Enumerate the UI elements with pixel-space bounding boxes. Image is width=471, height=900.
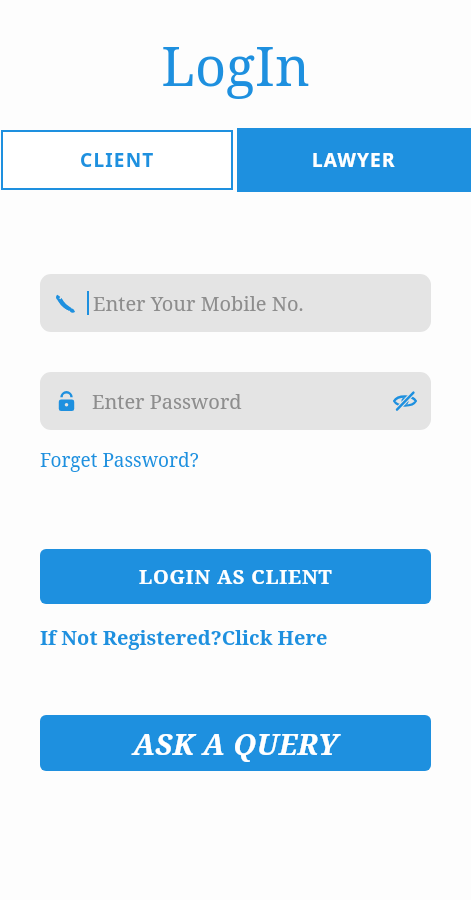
button[interactable]: Show password <box>383 379 427 423</box>
button[interactable]: Enter Your Mobile No. <box>40 274 431 332</box>
staticText: ASK A QUERY <box>133 724 339 763</box>
button[interactable]: LAWYER <box>237 128 471 192</box>
staticText: Enter Your Mobile No. <box>93 290 304 317</box>
button[interactable]: Enter Password <box>40 372 431 430</box>
staticText: LOGIN AS CLIENT <box>139 563 333 590</box>
button[interactable]: If Not Registered?Click Here <box>40 622 328 653</box>
staticText: Forget Password? <box>40 447 199 473</box>
staticText: CLIENT <box>80 147 155 173</box>
staticText: If Not Registered?Click Here <box>40 624 328 651</box>
staticText: LogIn <box>161 28 310 102</box>
staticText: LAWYER <box>312 147 396 173</box>
staticText: Enter Password <box>92 388 383 415</box>
button[interactable]: LOGIN AS CLIENT <box>40 549 431 604</box>
button[interactable]: Forget Password? <box>40 445 199 475</box>
button[interactable]: CLIENT <box>1 130 233 190</box>
button[interactable]: ASK A QUERY <box>40 715 431 771</box>
